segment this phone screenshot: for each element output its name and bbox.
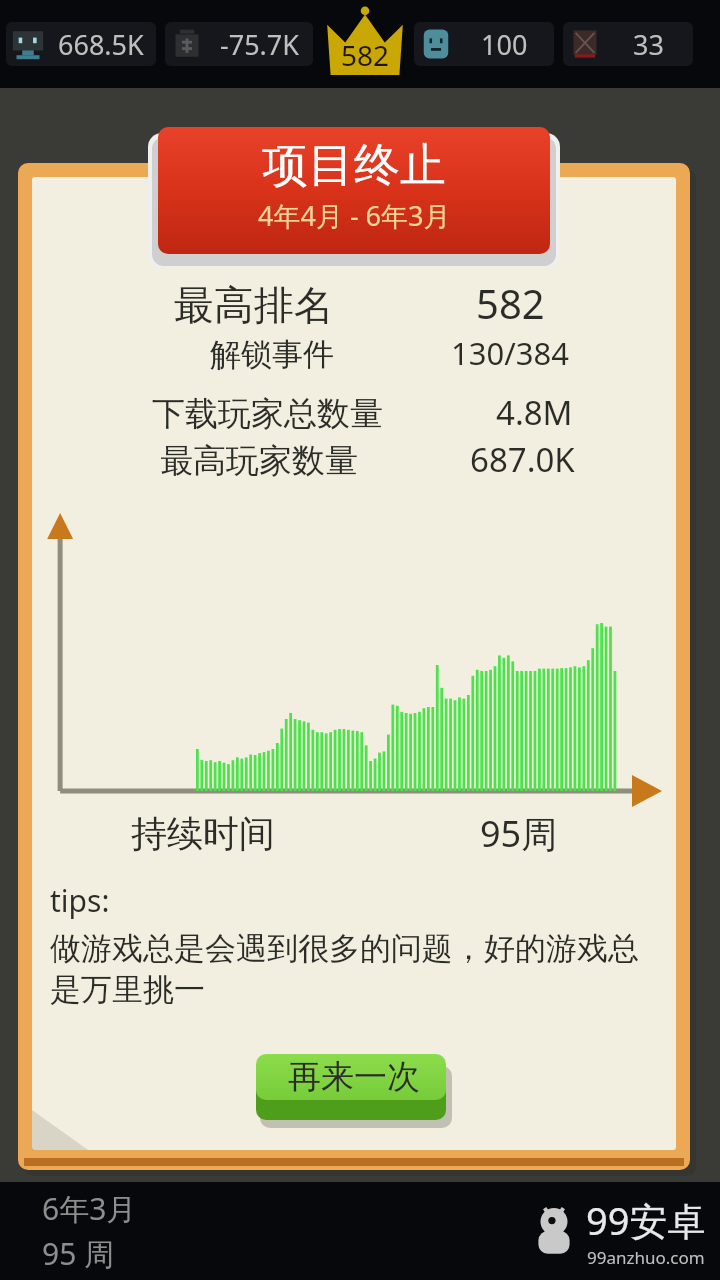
staticText: 582 (476, 276, 545, 330)
button[interactable]: 668.5K (6, 22, 156, 66)
staticText: 687.0K (470, 437, 575, 482)
staticText: 33 (633, 26, 664, 63)
staticText: 99安卓 (586, 1194, 706, 1246)
staticText: 解锁事件 (210, 335, 334, 374)
staticText: 最高排名 (174, 280, 334, 330)
button[interactable]: 33 (563, 22, 693, 66)
staticText: tips: (50, 880, 110, 921)
button[interactable]: 再来一次 (256, 1054, 452, 1126)
staticText: 持续时间 (131, 811, 275, 856)
button[interactable]: 100 (414, 22, 554, 66)
button[interactable]: Rank 582 (322, 7, 408, 81)
staticText: 项目终止 (262, 137, 446, 195)
staticText: 4.8M (496, 390, 573, 435)
staticText: 95 周 (42, 1233, 115, 1274)
staticText: 99anzhuo.com (587, 1246, 705, 1269)
staticText: 下载玩家总数量 (152, 393, 383, 435)
button[interactable]: -75.7K (165, 22, 313, 66)
staticText: 6年3月 (42, 1188, 137, 1229)
staticText: 再来一次 (288, 1056, 420, 1098)
staticText: 做游戏总是会遇到很多的问题，好的游戏总是万里挑一 (50, 929, 666, 1010)
staticText: 4年4月 - 6年3月 (258, 197, 451, 234)
staticText: -75.7K (220, 26, 299, 63)
staticText: 130/384 (451, 332, 569, 374)
staticText: 最高玩家数量 (160, 440, 358, 482)
staticText: 668.5K (58, 26, 144, 63)
staticText: 100 (481, 26, 528, 63)
staticText: 95周 (480, 809, 558, 858)
staticText: 582 (341, 36, 390, 74)
